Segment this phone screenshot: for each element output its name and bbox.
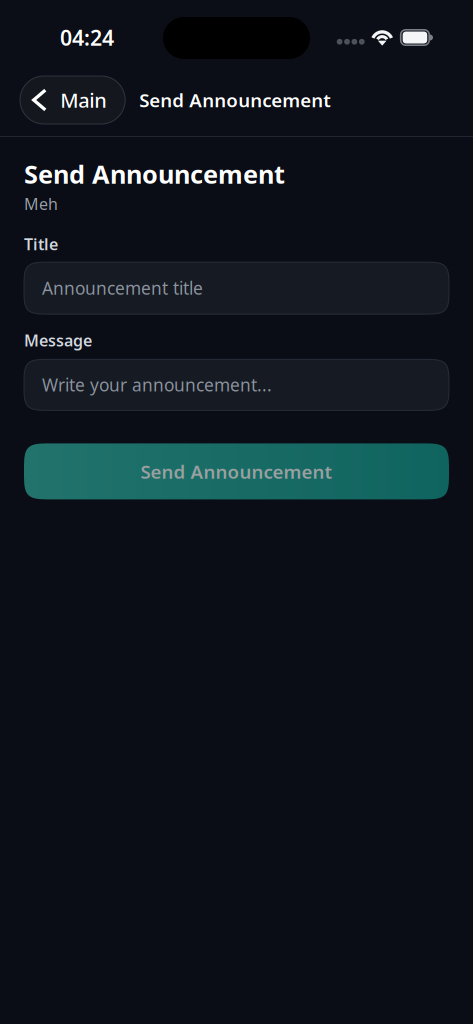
staticText: Send Announcement xyxy=(140,459,332,484)
staticText: Meh xyxy=(24,193,58,214)
button[interactable]: Main xyxy=(0,76,125,124)
button[interactable]: Write your announcement... xyxy=(24,359,449,410)
staticText: Send Announcement xyxy=(139,88,331,112)
staticText: Message xyxy=(24,330,92,351)
staticText: 04:24 xyxy=(60,23,114,52)
button[interactable]: Send Announcement xyxy=(24,443,449,499)
staticText: Title xyxy=(24,233,58,255)
staticText: Main xyxy=(60,87,107,113)
button[interactable]: Announcement title xyxy=(24,262,449,314)
staticText: Write your announcement... xyxy=(42,373,272,396)
staticText: Announcement title xyxy=(42,277,203,300)
staticText: Send Announcement xyxy=(24,157,285,191)
